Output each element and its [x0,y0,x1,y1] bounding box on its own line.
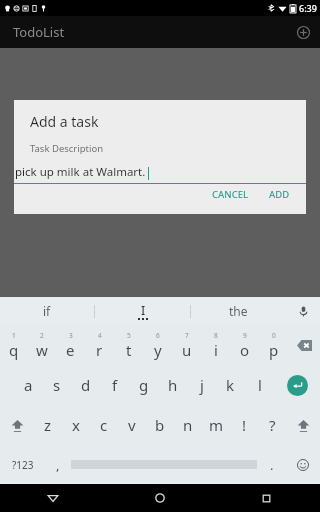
button[interactable]: 5 [114,325,143,365]
button[interactable]: j [187,365,216,405]
button[interactable]: 7 [172,325,201,365]
button[interactable]: if [0,297,94,325]
staticText: ?123 [12,458,34,472]
button[interactable]: ! [230,405,258,445]
button[interactable]: Shift [286,405,320,445]
staticText: 2 [40,331,44,340]
button[interactable]: CANCEL [206,184,255,205]
button[interactable]: Shift [0,405,34,445]
staticText: ? [269,415,276,435]
staticText: v [128,415,136,435]
staticText: TodoList [13,23,65,41]
staticText: Add a task [30,112,99,131]
button[interactable]: g [129,365,158,405]
staticText: 6:39 [299,2,317,14]
staticText: 7 [185,331,189,340]
staticText: f [112,375,118,395]
staticText: Task Description [30,142,104,155]
staticText: a [24,375,33,395]
button[interactable]: the [191,297,286,325]
button[interactable]: Backspace [288,325,320,365]
staticText: r [96,340,103,360]
button[interactable]: d [71,365,100,405]
button[interactable]: Voice input [286,297,320,325]
button[interactable]: 3 [56,325,85,365]
staticText: j [200,375,204,395]
staticText: , [56,456,60,474]
button[interactable]: Enter [274,365,320,405]
staticText: pick up milk at Walmart. [15,164,146,180]
staticText: k [226,375,235,395]
staticText: 4 [98,331,102,340]
staticText: if [43,303,51,319]
staticText: 0 [272,331,276,340]
button[interactable]: , [46,445,70,484]
staticText: q [9,340,19,360]
staticText: g [139,375,149,395]
staticText: n [183,415,193,435]
button[interactable]: n [174,405,202,445]
button[interactable]: k [216,365,245,405]
staticText: c [100,415,108,435]
button[interactable]: ?123 [0,445,46,484]
button[interactable]: 2 [28,325,56,365]
button[interactable]: a [14,365,42,405]
staticText: u [182,340,192,360]
staticText: 6 [156,331,160,340]
staticText: m [209,415,224,435]
staticText: y [154,340,162,360]
staticText: z [44,415,52,435]
button[interactable]: x [62,405,90,445]
button[interactable]: l [245,365,274,405]
staticText: p [269,340,279,360]
staticText: o [240,340,250,360]
button[interactable]: ? [258,405,286,445]
staticText: ADD [269,188,290,201]
button[interactable]: 8 [201,325,230,365]
staticText: x [72,415,80,435]
button[interactable]: Back [0,484,106,512]
staticText: 9 [243,331,247,340]
staticText: e [66,340,75,360]
button[interactable]: ADD [263,184,296,205]
staticText: the [229,303,248,319]
staticText: t [126,340,132,360]
staticText: 5 [127,331,131,340]
button[interactable]: Home [106,484,213,512]
staticText: l [258,375,262,395]
button[interactable]: . [258,445,286,484]
button[interactable]: Emoji [286,445,320,484]
staticText: d [81,375,91,395]
button[interactable]: s [42,365,71,405]
button[interactable]: v [118,405,146,445]
staticText: w [36,340,48,360]
staticText: s [53,375,61,395]
button[interactable]: 1 [0,325,28,365]
button[interactable]: m [202,405,230,445]
button[interactable]: b [146,405,174,445]
button[interactable]: I [95,297,190,325]
button[interactable]: h [158,365,187,405]
button[interactable]: 9 [230,325,259,365]
button[interactable]: z [34,405,62,445]
button[interactable]: Space [70,445,258,484]
staticText: b [155,415,165,435]
button[interactable]: 6 [143,325,172,365]
staticText: 3 [69,331,73,340]
button[interactable]: c [90,405,118,445]
staticText: 8 [214,331,218,340]
staticText: . [270,456,274,474]
button[interactable]: Add task [292,21,314,43]
button[interactable]: f [100,365,129,405]
staticText: CANCEL [212,188,249,201]
staticText: i [214,340,218,360]
staticText: 1 [12,331,16,340]
button[interactable]: 4 [85,325,114,365]
button[interactable]: 0 [259,325,288,365]
staticText: h [168,375,178,395]
staticText: ! [242,415,247,435]
staticText: I [141,302,146,318]
button[interactable]: Recents [213,484,320,512]
